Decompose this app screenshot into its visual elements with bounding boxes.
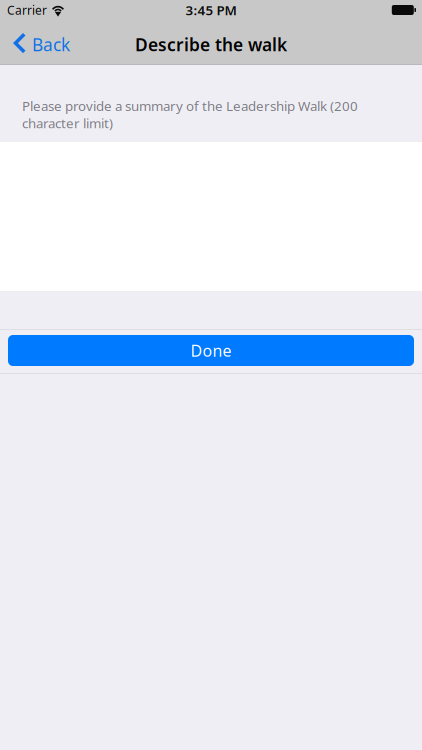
staticText: Back [32,33,70,56]
staticText: 3:45 PM [185,1,236,19]
staticText: Done [190,340,231,361]
staticText: character limit) [22,114,113,132]
staticText: Carrier [7,2,47,18]
button[interactable]: Back [0,20,80,65]
staticText: Please provide a summary of the Leadersh… [22,97,358,115]
staticText: Describe the walk [135,33,287,56]
button[interactable]: Done [0,329,422,374]
